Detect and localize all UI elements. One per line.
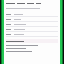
button[interactable] (6, 22, 58, 27)
button[interactable]: Navigation item (36, 2, 41, 5)
button[interactable] (6, 39, 58, 43)
button[interactable] (6, 17, 58, 22)
button[interactable]: Navigation item (17, 2, 25, 5)
button[interactable]: Navigation item (27, 2, 34, 5)
button[interactable] (6, 27, 58, 32)
button[interactable] (6, 32, 58, 37)
button[interactable]: Navigation item (6, 2, 15, 5)
button[interactable] (6, 12, 58, 17)
